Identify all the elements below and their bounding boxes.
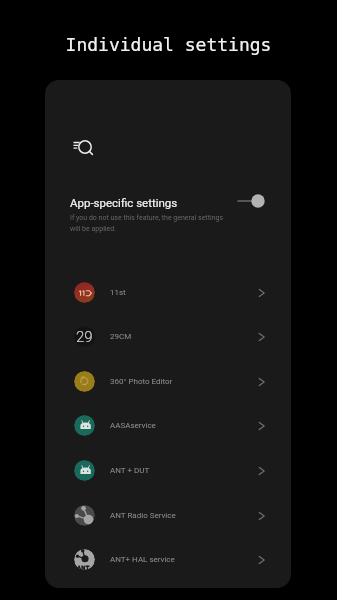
button[interactable]: 29 (45, 314, 291, 359)
staticText: ANT Radio Service (110, 511, 176, 520)
button[interactable]: 360° Photo Editor (45, 359, 291, 404)
button[interactable]: ANT Radio Service (45, 493, 291, 538)
button[interactable]: ANT + DUT (45, 448, 291, 493)
staticText: 360° Photo Editor (110, 377, 173, 386)
staticText: 11st (110, 288, 126, 297)
staticText: 29 (76, 328, 93, 346)
button[interactable]: ANT+ HAL service (45, 537, 291, 582)
staticText: App-specific settings (70, 196, 178, 209)
staticText: AASAservice (110, 421, 156, 430)
button[interactable]: 11st (45, 270, 291, 315)
staticText: Individual settings (0, 34, 337, 55)
button[interactable]: Toggle app-specific settings (235, 190, 269, 212)
staticText: ANT + DUT (110, 466, 150, 475)
staticText: ANT+ HAL service (110, 555, 175, 564)
button[interactable]: AASAservice (45, 403, 291, 448)
staticText: If you do not use this feature, the gene… (70, 214, 224, 232)
staticText: 29CM (110, 332, 132, 341)
button[interactable]: Search (70, 132, 100, 162)
